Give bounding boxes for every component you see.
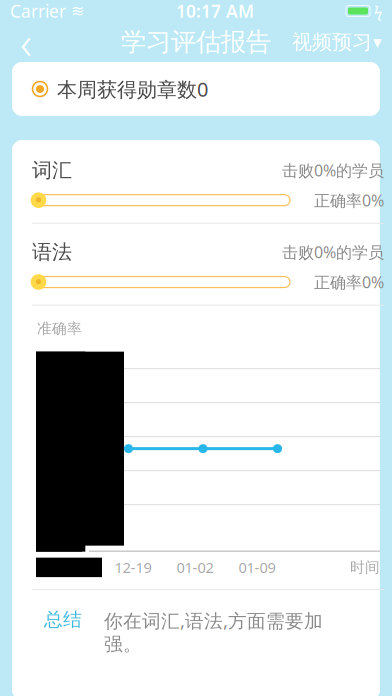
staticText: 本周获得勋章数0	[57, 76, 208, 102]
staticText: 10:17 AM	[176, 0, 254, 22]
staticText: 视频预习	[292, 30, 372, 54]
staticText: 01-02	[176, 558, 213, 577]
staticText: 总结	[44, 608, 82, 631]
staticText: 击败0%的学员	[282, 241, 384, 263]
staticText: ≋	[66, 2, 84, 20]
staticText: 语法	[32, 240, 72, 264]
staticText: 你在词汇,语法,方面需要加强。	[104, 608, 323, 656]
staticText: 正确率0%	[314, 190, 384, 211]
staticText: ‹	[20, 12, 32, 72]
staticText: 时间	[350, 558, 380, 576]
staticText: 正确率0%	[314, 271, 384, 293]
staticText: 词汇	[32, 158, 72, 183]
staticText: Carrier	[10, 0, 66, 22]
staticText: 击败0%的学员	[282, 160, 384, 181]
button[interactable]: Back	[0, 22, 52, 62]
staticText: 准确率	[37, 320, 82, 338]
staticText: ϟ	[370, 1, 382, 21]
staticText: ▾	[373, 32, 382, 52]
button[interactable]: 视频预习	[282, 22, 392, 62]
staticText: 学习评估报告	[121, 26, 271, 57]
staticText: 12-19	[114, 558, 151, 577]
staticText: 01-09	[238, 558, 275, 577]
